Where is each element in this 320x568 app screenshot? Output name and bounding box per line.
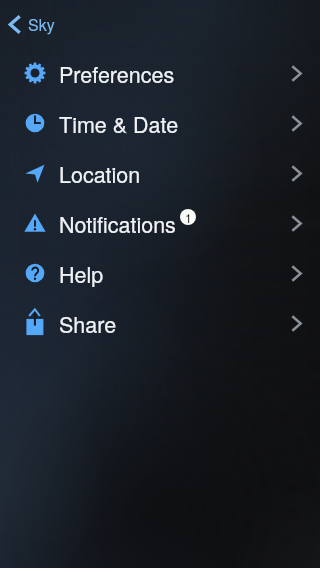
button[interactable]: Preferences — [0, 48, 320, 98]
button[interactable]: Location — [0, 148, 320, 198]
staticText: Notifications — [59, 208, 176, 239]
staticText: Sky — [28, 13, 55, 36]
staticText: Help — [59, 258, 104, 289]
staticText: Share — [59, 308, 117, 339]
button[interactable]: Help — [0, 248, 320, 298]
button[interactable]: Notifications — [0, 198, 320, 248]
staticText: Location — [59, 158, 141, 189]
staticText: 1 — [185, 209, 192, 225]
button[interactable]: Back — [0, 0, 55, 48]
staticText: Preferences — [59, 58, 175, 89]
button[interactable]: Share — [0, 298, 320, 348]
staticText: Time & Date — [59, 108, 179, 139]
other: Back — [9, 15, 21, 34]
button[interactable]: Time & Date — [0, 98, 320, 148]
